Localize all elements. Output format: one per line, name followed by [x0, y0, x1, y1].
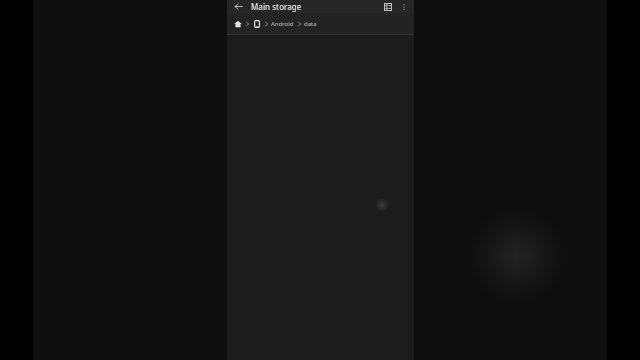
button[interactable]: Internal storage	[251, 18, 262, 29]
staticText: Main storage	[251, 1, 381, 12]
button[interactable]: data	[303, 19, 318, 29]
button[interactable]: Navigate up	[231, 0, 245, 13]
button[interactable]: More options	[398, 1, 410, 13]
button[interactable]: Switch view	[381, 0, 395, 13]
staticText: data	[304, 20, 317, 28]
button[interactable]: Android	[270, 19, 295, 29]
staticText: Android	[271, 20, 294, 28]
button[interactable]: Home	[232, 18, 243, 29]
